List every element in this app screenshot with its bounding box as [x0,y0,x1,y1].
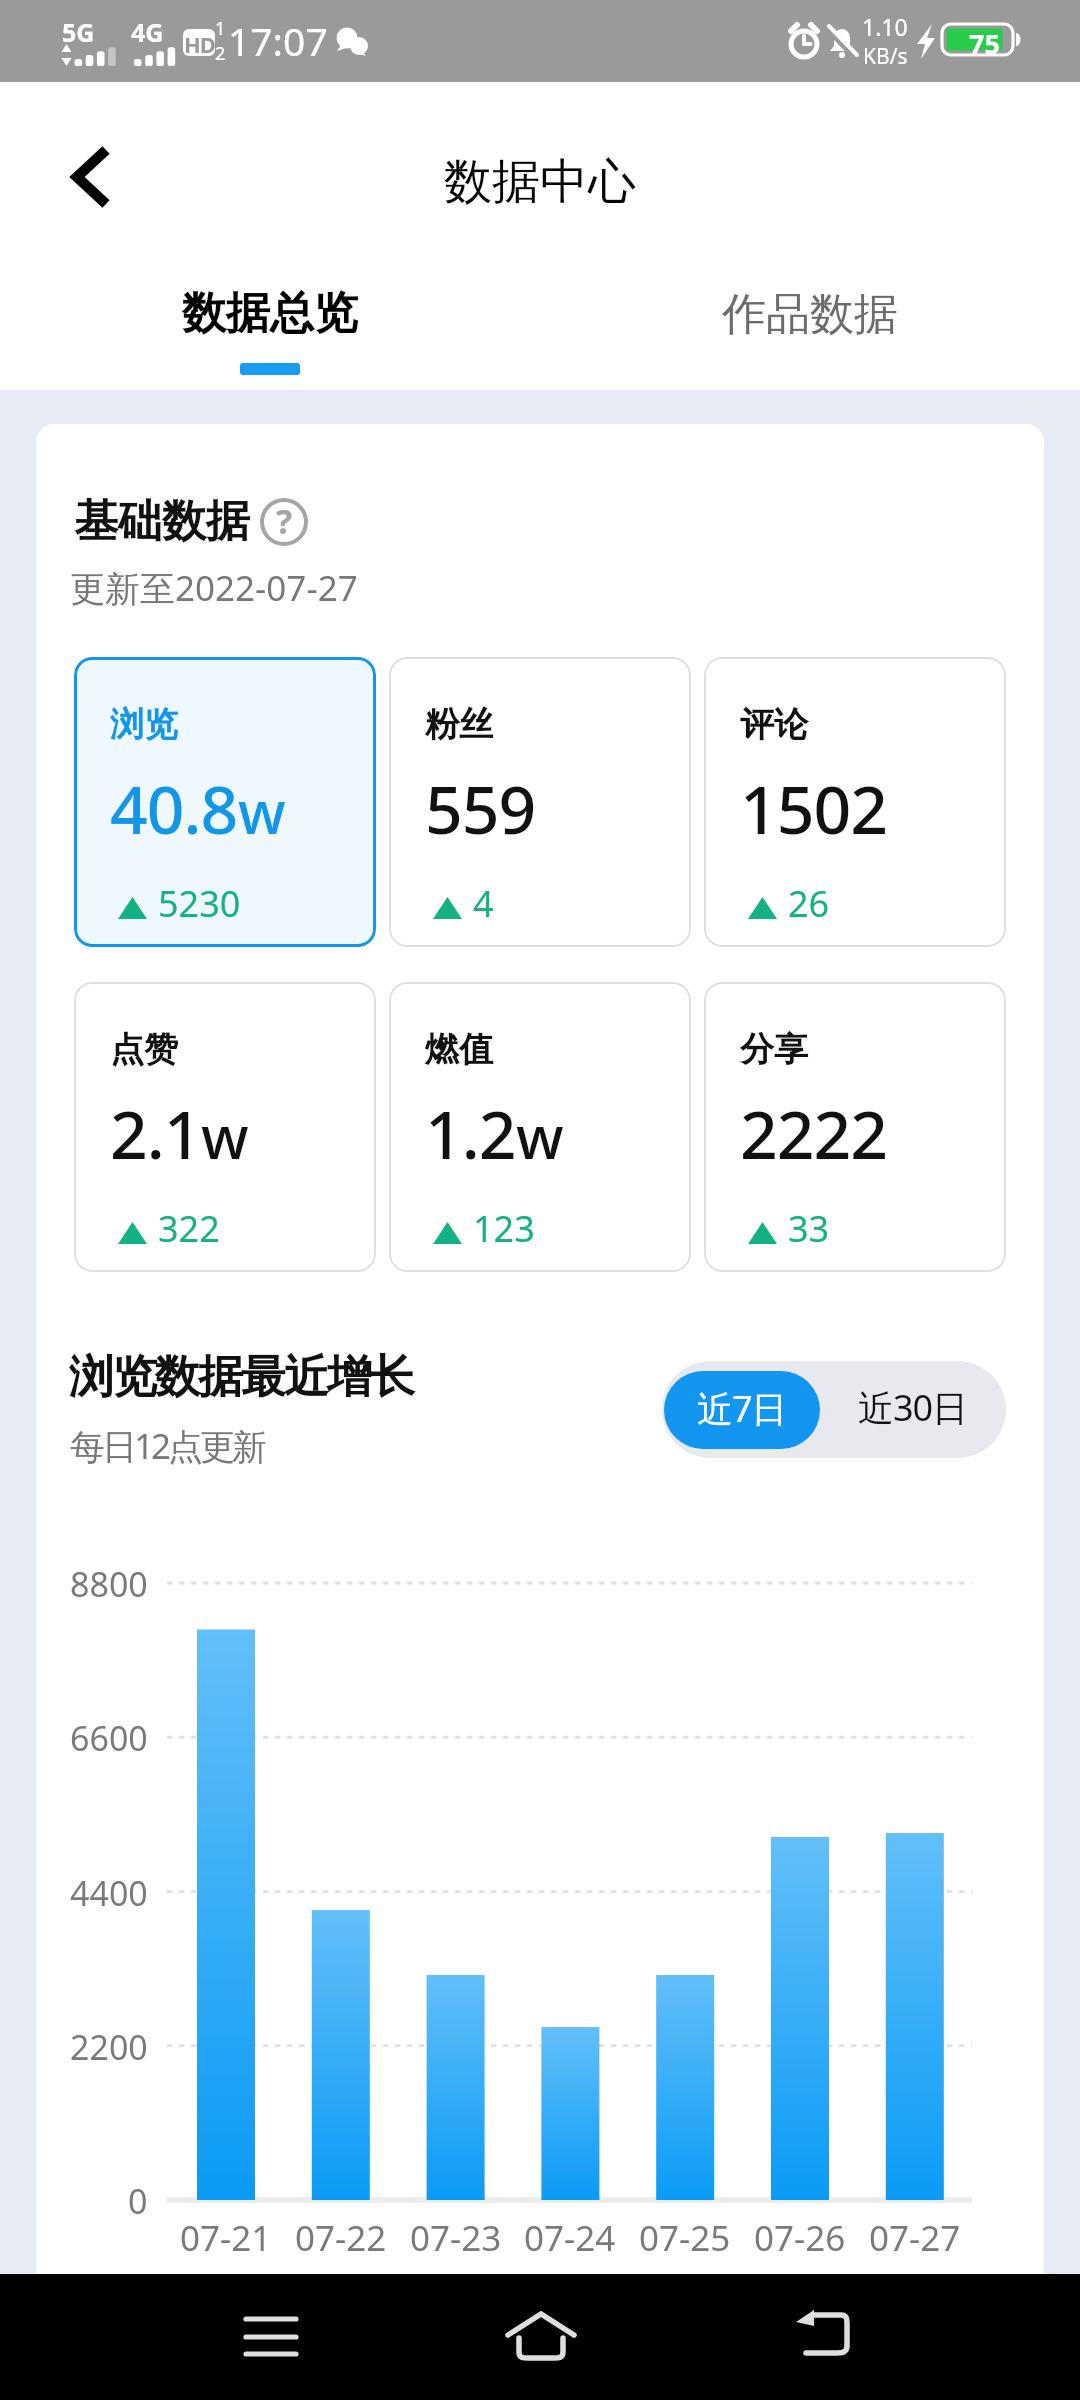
staticText: 07-27 [869,2214,961,2262]
button[interactable]: 作品数据 [540,256,1080,390]
staticText: 4 [473,879,494,928]
button[interactable]: 分享 [704,982,1006,1272]
staticText: 07-25 [639,2214,731,2262]
staticText: 基础数据 [74,494,250,549]
staticText: 分享 [740,1028,808,1071]
staticText: 322 [158,1204,220,1253]
staticText: 559 [425,763,536,853]
staticText: 评论 [740,703,808,746]
staticText: 07-24 [524,2214,616,2262]
button[interactable]: Back [763,2284,875,2396]
button[interactable]: 近30日 [820,1361,1006,1458]
staticText: 1502 [740,763,888,853]
staticText: 更新至2022-07-27 [70,564,358,612]
staticText: 40.8 [110,763,238,853]
staticText: 1.2 [425,1088,516,1178]
button[interactable]: 燃值 [389,982,691,1272]
staticText: 作品数据 [722,287,898,342]
staticText: 数据中心 [444,152,636,212]
staticText: 2 [215,41,226,66]
staticText: 近7日 [697,1384,787,1433]
button[interactable]: 近7日 [664,1371,820,1449]
staticText: 2200 [70,2024,148,2070]
staticText: 4400 [70,1870,148,1916]
button[interactable]: Back [36,117,140,221]
staticText: 07-23 [410,2214,502,2262]
button[interactable]: 点赞 [74,982,376,1272]
staticText: 75 [969,25,1000,59]
staticText: w [516,1096,564,1176]
staticText: 17:07 [228,14,328,67]
staticText: 粉丝 [425,703,493,746]
button[interactable]: 粉丝 [389,657,691,947]
staticText: 1.10 [862,11,908,42]
button[interactable]: 评论 [704,657,1006,947]
staticText: 5G [62,15,95,49]
staticText: 2222 [740,1088,888,1178]
staticText: 6600 [70,1715,148,1761]
staticText: 2.1 [110,1088,201,1178]
staticText: KB/s [863,42,908,71]
staticText: 每日12点更新 [70,1422,265,1470]
staticText: 0 [128,2178,148,2224]
staticText: HD [184,29,215,56]
staticText: 123 [473,1204,535,1253]
button[interactable]: 浏览 [74,657,376,947]
staticText: w [201,1096,249,1176]
staticText: 点赞 [110,1028,178,1071]
staticText: 1 [215,16,226,41]
button[interactable]: Home [484,2284,596,2396]
staticText: 07-21 [180,2214,272,2262]
button[interactable]: 数据总览 [0,256,540,390]
button[interactable]: Recents [215,2284,327,2396]
staticText: ? [276,498,293,544]
staticText: 26 [788,879,830,928]
staticText: 5230 [158,879,241,928]
staticText: 07-26 [754,2214,846,2262]
staticText: 浏览数据最近增长 [70,1349,414,1406]
staticText: 浏览 [110,703,178,746]
staticText: 数据总览 [182,286,358,341]
staticText: 4G [131,15,164,49]
staticText: 近30日 [858,1383,968,1432]
staticText: 33 [788,1204,830,1253]
staticText: 07-22 [295,2214,387,2262]
staticText: 燃值 [425,1028,493,1071]
button[interactable]: Help [260,498,308,546]
staticText: w [238,771,286,851]
staticText: 8800 [70,1561,148,1607]
